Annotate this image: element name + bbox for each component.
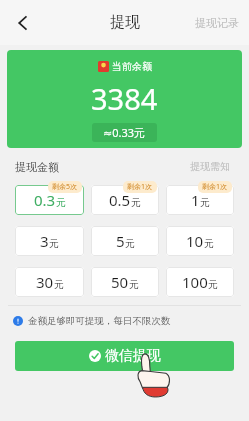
staticText: 10 (186, 231, 204, 251)
staticText: 当前余额 (112, 60, 152, 73)
staticText: 提现记录 (195, 16, 239, 30)
staticText: 元 (49, 237, 59, 250)
staticText: 元 (204, 237, 214, 250)
button[interactable]: 10 (166, 226, 234, 256)
staticText: 金额足够即可提现，每日不限次数 (28, 315, 171, 327)
staticText: 提现金额 (15, 160, 59, 174)
staticText: 剩余5次 (52, 182, 78, 192)
button[interactable]: 1 (166, 185, 234, 215)
button[interactable]: 0.3 (15, 185, 84, 215)
staticText: 元 (131, 196, 141, 209)
button[interactable]: 提现需知 (186, 156, 234, 177)
staticText: 提现 (110, 13, 140, 32)
staticText: 元 (129, 278, 139, 291)
button[interactable]: Back (6, 6, 40, 40)
staticText: 元 (125, 237, 135, 250)
button[interactable]: 100 (166, 267, 234, 297)
staticText: 元 (200, 196, 210, 209)
button[interactable]: 30 (15, 267, 84, 297)
staticText: 0.5 (109, 190, 131, 210)
staticText: 提现需知 (190, 160, 230, 173)
staticText: 100 (182, 272, 208, 292)
button[interactable]: 3 (15, 226, 84, 256)
button[interactable]: 微信提现 (15, 341, 234, 371)
staticText: 剩余1次 (202, 182, 228, 192)
button[interactable]: 提现记录 (185, 8, 249, 38)
staticText: 50 (111, 272, 129, 292)
staticText: 5 (116, 231, 125, 251)
staticText: 剩余1次 (127, 182, 153, 192)
staticText: 元 (208, 278, 218, 291)
button[interactable]: 0.5 (91, 185, 159, 215)
staticText: 元 (54, 278, 64, 291)
staticText: 30 (36, 272, 54, 292)
staticText: 3384 (91, 79, 158, 118)
staticText: 1 (191, 190, 200, 210)
staticText: ≈0.33元 (103, 125, 146, 140)
staticText: 3 (40, 231, 49, 251)
staticText: 微信提现 (105, 347, 161, 365)
button[interactable]: 50 (91, 267, 159, 297)
staticText: 0.3 (34, 190, 56, 210)
button[interactable]: 5 (91, 226, 159, 256)
staticText: 元 (56, 196, 66, 209)
